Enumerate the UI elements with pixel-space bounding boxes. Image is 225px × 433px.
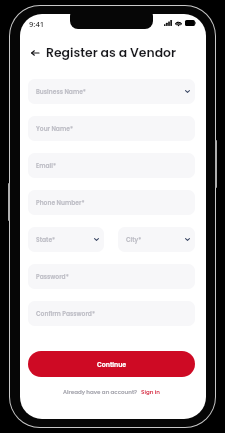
staticText: Password* xyxy=(36,273,69,281)
button[interactable]: Phone Number* xyxy=(28,190,195,215)
button[interactable]: Business Name* xyxy=(28,79,195,104)
staticText: Register as a Vendor xyxy=(46,44,177,61)
staticText: City* xyxy=(126,236,142,244)
button[interactable]: Continue xyxy=(28,351,195,377)
staticText: State* xyxy=(36,236,56,244)
staticText: Confirm Password* xyxy=(36,310,96,318)
staticText: Continue xyxy=(97,360,127,369)
button[interactable]: State* xyxy=(28,227,104,252)
staticText: Already have an account? xyxy=(63,388,138,396)
button[interactable]: Back xyxy=(31,46,42,59)
button[interactable]: City* xyxy=(118,227,195,252)
button[interactable]: Sign in xyxy=(141,388,160,396)
button[interactable]: Your Name* xyxy=(28,116,195,141)
staticText: 9:41 xyxy=(29,19,45,29)
staticText: Sign in xyxy=(141,388,160,396)
button[interactable]: Password* xyxy=(28,264,195,289)
staticText: Business Name* xyxy=(36,88,86,96)
staticText: Phone Number* xyxy=(36,199,85,207)
staticText: Your Name* xyxy=(36,125,74,133)
button[interactable]: Confirm Password* xyxy=(28,301,195,326)
staticText: Email* xyxy=(36,162,56,170)
button[interactable]: Email* xyxy=(28,153,195,178)
